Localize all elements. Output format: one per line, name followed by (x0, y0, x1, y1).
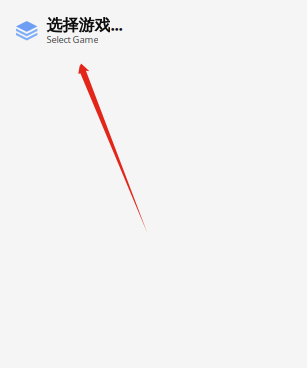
staticText: Select Game (46, 33, 98, 46)
button[interactable]: 选择游戏... (0, 8, 307, 54)
staticText: 选择游戏... (46, 14, 122, 35)
